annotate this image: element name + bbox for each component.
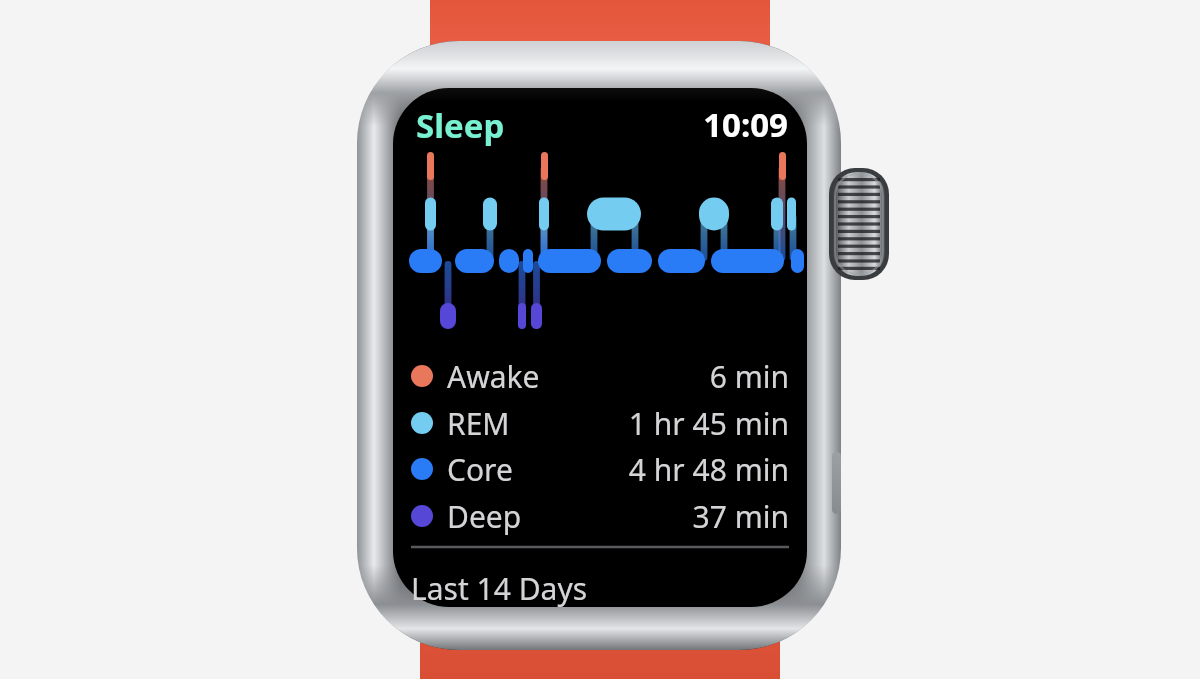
staticText: 1 hr 45 min [514, 403, 789, 444]
button[interactable]: Awake [411, 355, 789, 397]
staticText: 4 hr 48 min [517, 449, 789, 490]
staticText: 6 min [544, 356, 789, 397]
button[interactable]: Deep [411, 495, 789, 537]
staticText: Deep [447, 496, 522, 537]
button[interactable]: REM [411, 402, 789, 444]
staticText: Last 14 Days [411, 568, 588, 609]
staticText: Sleep [416, 103, 505, 148]
button[interactable]: Core [411, 448, 789, 490]
staticText: 10:09 [692, 102, 788, 147]
staticText: Core [447, 449, 513, 490]
button[interactable]: Last 14 Days [411, 568, 588, 609]
staticText: REM [447, 403, 510, 444]
button[interactable]: Sleep [416, 103, 505, 148]
staticText: Awake [447, 356, 540, 397]
staticText: 37 min [526, 496, 789, 537]
